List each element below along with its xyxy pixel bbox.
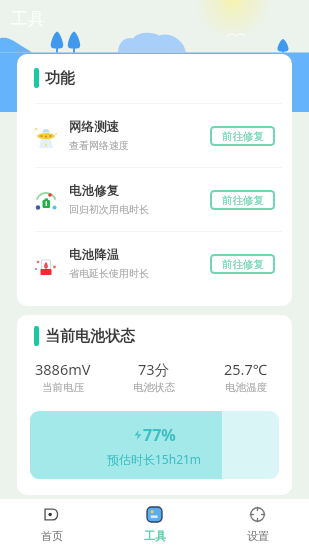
button[interactable]: 前往修复 — [210, 126, 275, 146]
button[interactable]: 工具 — [103, 506, 206, 543]
staticText: 电池温度 — [225, 381, 267, 394]
staticText: 工具 — [11, 8, 45, 29]
button[interactable]: 前往修复 — [210, 254, 275, 274]
staticText: 73分 — [138, 359, 170, 379]
button[interactable]: 首页 — [0, 506, 103, 543]
staticText: 当前电池状态 — [45, 327, 135, 346]
staticText: 电池降温 — [69, 247, 119, 263]
button[interactable]: 前往修复 — [210, 190, 275, 210]
staticText: 电池状态 — [133, 381, 175, 394]
button[interactable]: 电池降温 — [17, 232, 292, 295]
staticText: 77% — [143, 424, 176, 446]
staticText: 回归初次用电时长 — [69, 203, 149, 216]
staticText: 查看网络速度 — [69, 139, 129, 152]
staticText: 3886mV — [35, 359, 91, 379]
staticText: 前往修复 — [222, 258, 264, 271]
staticText: 省电延长使用时长 — [69, 267, 149, 280]
staticText: 25.7℃ — [224, 359, 268, 379]
staticText: 功能 — [45, 69, 75, 88]
staticText: 设置 — [247, 529, 269, 543]
staticText: 前往修复 — [222, 130, 264, 143]
staticText: 工具 — [144, 529, 166, 543]
button[interactable]: 设置 — [206, 506, 309, 543]
staticText: 预估时长15h21m — [107, 451, 202, 467]
staticText: 网络测速 — [69, 119, 119, 135]
button[interactable]: 网络测速 — [17, 104, 292, 167]
button[interactable]: 电池修复 — [17, 168, 292, 231]
staticText: 首页 — [41, 529, 63, 543]
staticText: 电池修复 — [69, 183, 119, 199]
staticText: 前往修复 — [222, 194, 264, 207]
staticText: 当前电压 — [42, 381, 84, 394]
